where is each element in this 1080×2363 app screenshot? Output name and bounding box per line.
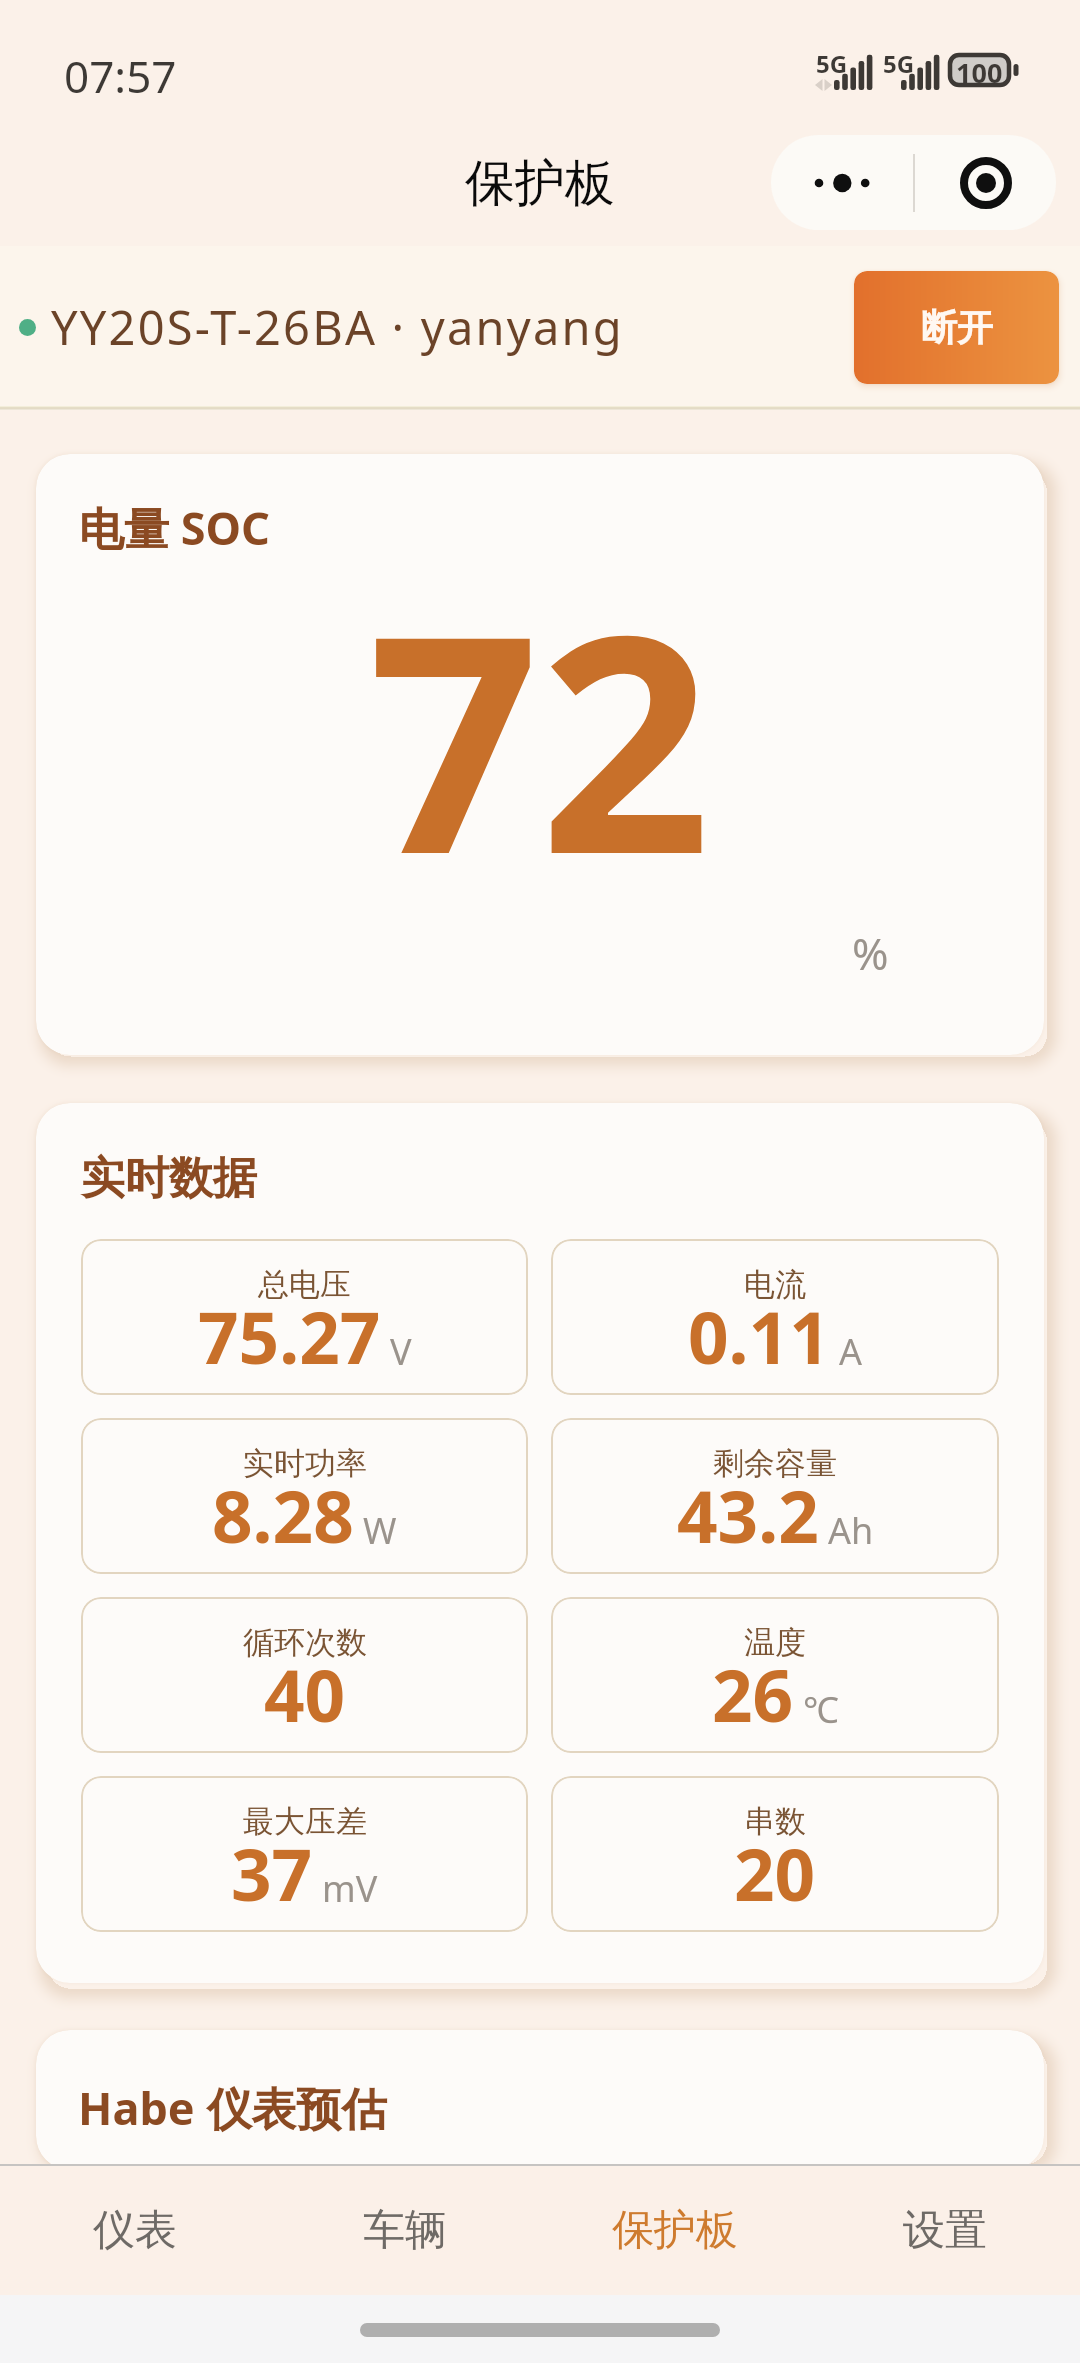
staticText: 26 xyxy=(712,1646,794,1743)
staticText: 72 xyxy=(368,532,712,941)
staticText: 保护板 xyxy=(0,152,1080,215)
staticText: 车辆 xyxy=(363,2204,447,2257)
staticText: 温度 xyxy=(744,1623,806,1662)
staticText: 5G xyxy=(883,47,915,80)
button[interactable]: 最大压差 xyxy=(81,1776,528,1932)
staticText: 40 xyxy=(264,1646,346,1743)
button[interactable]: 设置 xyxy=(810,2166,1080,2295)
staticText: 设置 xyxy=(903,2204,987,2257)
button[interactable]: Close mini program xyxy=(915,135,1056,230)
button[interactable]: 电流 xyxy=(551,1239,999,1395)
button[interactable]: YY20S-T-26BA · yanyang xyxy=(0,246,1080,408)
staticText: A xyxy=(839,1327,863,1376)
button[interactable]: 仪表 xyxy=(0,2166,270,2295)
staticText: 20 xyxy=(734,1825,816,1922)
staticText: ℃ xyxy=(803,1685,839,1734)
button[interactable]: 串数 xyxy=(551,1776,999,1932)
staticText: 最大压差 xyxy=(243,1802,367,1841)
button[interactable]: 循环次数 xyxy=(81,1597,528,1753)
button[interactable]: 车辆 xyxy=(270,2166,540,2295)
staticText: 5G xyxy=(816,47,848,80)
staticText: 剩余容量 xyxy=(713,1444,837,1483)
staticText: % xyxy=(852,923,889,983)
staticText: 电量 SOC xyxy=(79,497,270,558)
staticText: 断开 xyxy=(921,305,993,350)
staticText: 75.27 xyxy=(198,1288,381,1385)
staticText: V xyxy=(390,1327,412,1376)
staticText: 8.28 xyxy=(212,1467,354,1564)
staticText: 仪表 xyxy=(93,2204,177,2257)
button[interactable]: 实时功率 xyxy=(81,1418,528,1574)
staticText: Ah xyxy=(828,1506,874,1555)
staticText: mV xyxy=(322,1864,378,1913)
staticText: 0.11 xyxy=(688,1288,830,1385)
button[interactable]: 温度 xyxy=(551,1597,999,1753)
button[interactable]: 实时数据 xyxy=(36,1103,1044,1983)
staticText: 总电压 xyxy=(258,1265,351,1304)
staticText: YY20S-T-26BA · yanyang xyxy=(51,295,624,359)
button[interactable]: 保护板 xyxy=(540,2166,810,2295)
staticText: 实时数据 xyxy=(81,1151,257,1206)
staticText: Habe 仪表预估 xyxy=(78,2077,387,2138)
staticText: 43.2 xyxy=(677,1467,819,1564)
button[interactable]: More options xyxy=(771,135,913,230)
staticText: 保护板 xyxy=(612,2204,738,2257)
staticText: W xyxy=(363,1506,397,1555)
button[interactable]: Habe 仪表预估 xyxy=(36,2030,1044,2170)
button[interactable]: 总电压 xyxy=(81,1239,528,1395)
staticText: 实时功率 xyxy=(243,1444,367,1483)
button[interactable]: 剩余容量 xyxy=(551,1418,999,1574)
staticText: 100 xyxy=(956,54,1003,90)
staticText: 串数 xyxy=(744,1802,806,1841)
staticText: 37 xyxy=(231,1825,313,1922)
button[interactable]: 断开 xyxy=(854,271,1059,384)
button[interactable]: 电量 SOC xyxy=(36,454,1044,1055)
staticText: 07:57 xyxy=(64,46,177,106)
staticText: 电流 xyxy=(744,1265,806,1304)
staticText: 循环次数 xyxy=(243,1623,367,1662)
